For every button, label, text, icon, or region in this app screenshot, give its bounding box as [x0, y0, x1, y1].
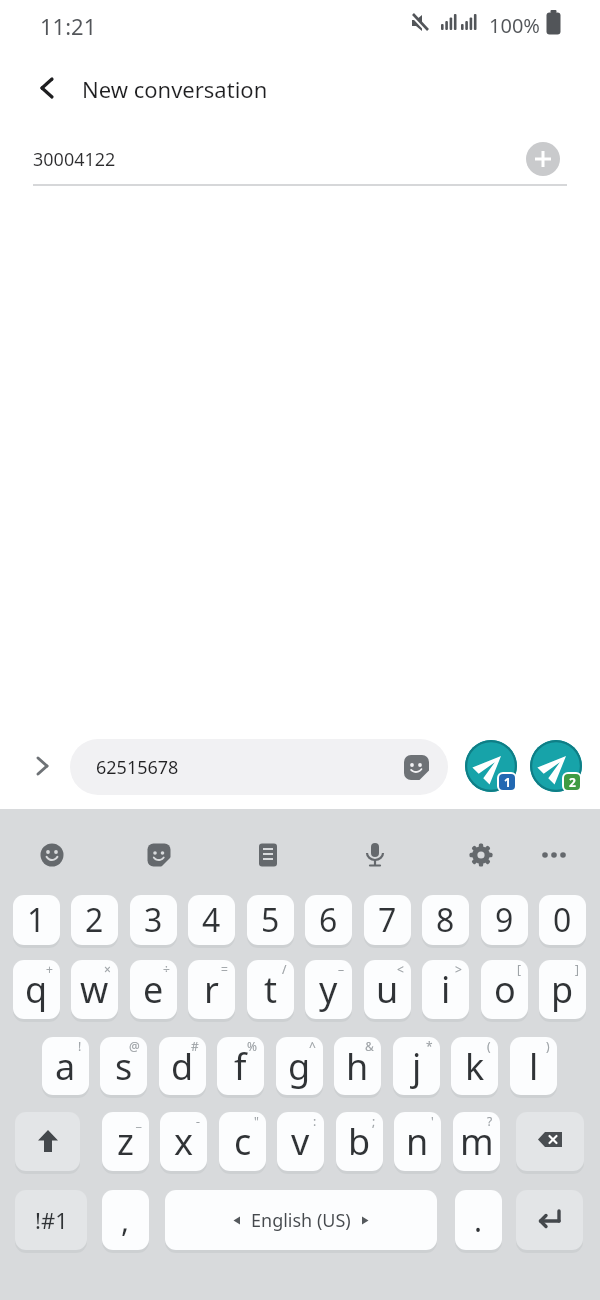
- button[interactable]: 2: [71, 895, 118, 945]
- staticText: !#1: [35, 1205, 68, 1235]
- staticText: -: [196, 1113, 200, 1129]
- button[interactable]: y: [305, 960, 352, 1019]
- button[interactable]: h: [334, 1037, 381, 1095]
- button[interactable]: [465, 740, 517, 792]
- staticText: /: [282, 961, 287, 977]
- staticText: (: [487, 1038, 491, 1054]
- staticText: 3: [144, 898, 163, 942]
- button[interactable]: n: [394, 1112, 441, 1171]
- staticText: 2: [569, 774, 576, 790]
- button[interactable]: q: [13, 960, 60, 1019]
- staticText: l: [529, 1042, 539, 1091]
- button[interactable]: [28, 68, 68, 108]
- button[interactable]: l: [510, 1037, 557, 1095]
- button[interactable]: 3: [130, 895, 177, 945]
- staticText: ): [546, 1038, 550, 1054]
- button[interactable]: .: [455, 1190, 502, 1250]
- staticText: –: [338, 961, 345, 977]
- staticText: f: [234, 1042, 247, 1091]
- button[interactable]: ,: [102, 1190, 149, 1250]
- staticText: 30004122: [33, 147, 116, 172]
- button[interactable]: w: [71, 960, 118, 1019]
- staticText: j: [412, 1042, 422, 1091]
- staticText: s: [115, 1042, 133, 1091]
- button[interactable]: [516, 1112, 584, 1171]
- button[interactable]: c: [219, 1112, 266, 1171]
- button[interactable]: p: [539, 960, 586, 1019]
- button[interactable]: 5: [247, 895, 294, 945]
- staticText: 62515678: [96, 755, 179, 780]
- staticText: 100%: [489, 12, 540, 39]
- staticText: o: [494, 965, 516, 1014]
- button[interactable]: [530, 740, 582, 792]
- button[interactable]: [22, 746, 62, 786]
- staticText: 11:21: [40, 11, 97, 41]
- button[interactable]: a: [42, 1037, 89, 1095]
- staticText: 8: [436, 898, 455, 942]
- button[interactable]: 9: [481, 895, 528, 945]
- button[interactable]: i: [422, 960, 469, 1019]
- button[interactable]: x: [160, 1112, 207, 1171]
- staticText: 1: [27, 898, 46, 942]
- staticText: 1: [504, 774, 511, 790]
- button[interactable]: [137, 833, 181, 877]
- button[interactable]: !#1: [15, 1190, 87, 1250]
- staticText: #: [191, 1038, 199, 1054]
- button[interactable]: u: [364, 960, 411, 1019]
- button[interactable]: 4: [188, 895, 235, 945]
- button[interactable]: [15, 1112, 80, 1171]
- staticText: %: [247, 1038, 257, 1054]
- button[interactable]: 8: [422, 895, 469, 945]
- button[interactable]: f: [217, 1037, 264, 1095]
- button[interactable]: v: [277, 1112, 324, 1171]
- button[interactable]: d: [159, 1037, 206, 1095]
- staticText: q: [25, 965, 48, 1014]
- staticText: x: [174, 1117, 194, 1166]
- button[interactable]: j: [393, 1037, 440, 1095]
- staticText: _: [136, 1113, 142, 1129]
- button[interactable]: [30, 833, 74, 877]
- button[interactable]: m: [453, 1112, 500, 1171]
- button[interactable]: English (US): [165, 1190, 437, 1250]
- staticText: New conversation: [82, 74, 268, 104]
- staticText: k: [465, 1042, 485, 1091]
- button[interactable]: o: [481, 960, 528, 1019]
- button[interactable]: [459, 833, 503, 877]
- staticText: ×: [104, 961, 111, 977]
- button[interactable]: [526, 142, 560, 176]
- staticText: p: [551, 965, 574, 1014]
- staticText: t: [264, 965, 277, 1014]
- button[interactable]: k: [451, 1037, 498, 1095]
- staticText: 2: [85, 898, 104, 942]
- button[interactable]: 1: [13, 895, 60, 945]
- staticText: ,: [121, 1200, 130, 1241]
- staticText: :: [313, 1113, 317, 1129]
- button[interactable]: [246, 833, 290, 877]
- staticText: d: [171, 1042, 194, 1091]
- button[interactable]: 6: [305, 895, 352, 945]
- staticText: i: [441, 965, 451, 1014]
- staticText: !: [78, 1038, 82, 1054]
- staticText: 0: [553, 898, 572, 942]
- button[interactable]: 0: [539, 895, 586, 945]
- staticText: 6: [319, 898, 338, 942]
- staticText: ?: [487, 1113, 493, 1129]
- staticText: &: [365, 1038, 374, 1054]
- staticText: r: [204, 965, 219, 1014]
- button[interactable]: b: [336, 1112, 383, 1171]
- button[interactable]: 7: [364, 895, 411, 945]
- button[interactable]: s: [100, 1037, 147, 1095]
- button[interactable]: [516, 1190, 583, 1250]
- button[interactable]: [532, 833, 576, 877]
- button[interactable]: t: [247, 960, 294, 1019]
- button[interactable]: r: [188, 960, 235, 1019]
- button[interactable]: z: [102, 1112, 149, 1171]
- button[interactable]: [353, 833, 397, 877]
- button[interactable]: e: [130, 960, 177, 1019]
- staticText: z: [117, 1117, 134, 1166]
- staticText: ': [431, 1113, 434, 1129]
- staticText: ^: [309, 1038, 316, 1054]
- button[interactable]: 62515678: [70, 739, 448, 795]
- staticText: 5: [261, 898, 280, 942]
- button[interactable]: g: [276, 1037, 323, 1095]
